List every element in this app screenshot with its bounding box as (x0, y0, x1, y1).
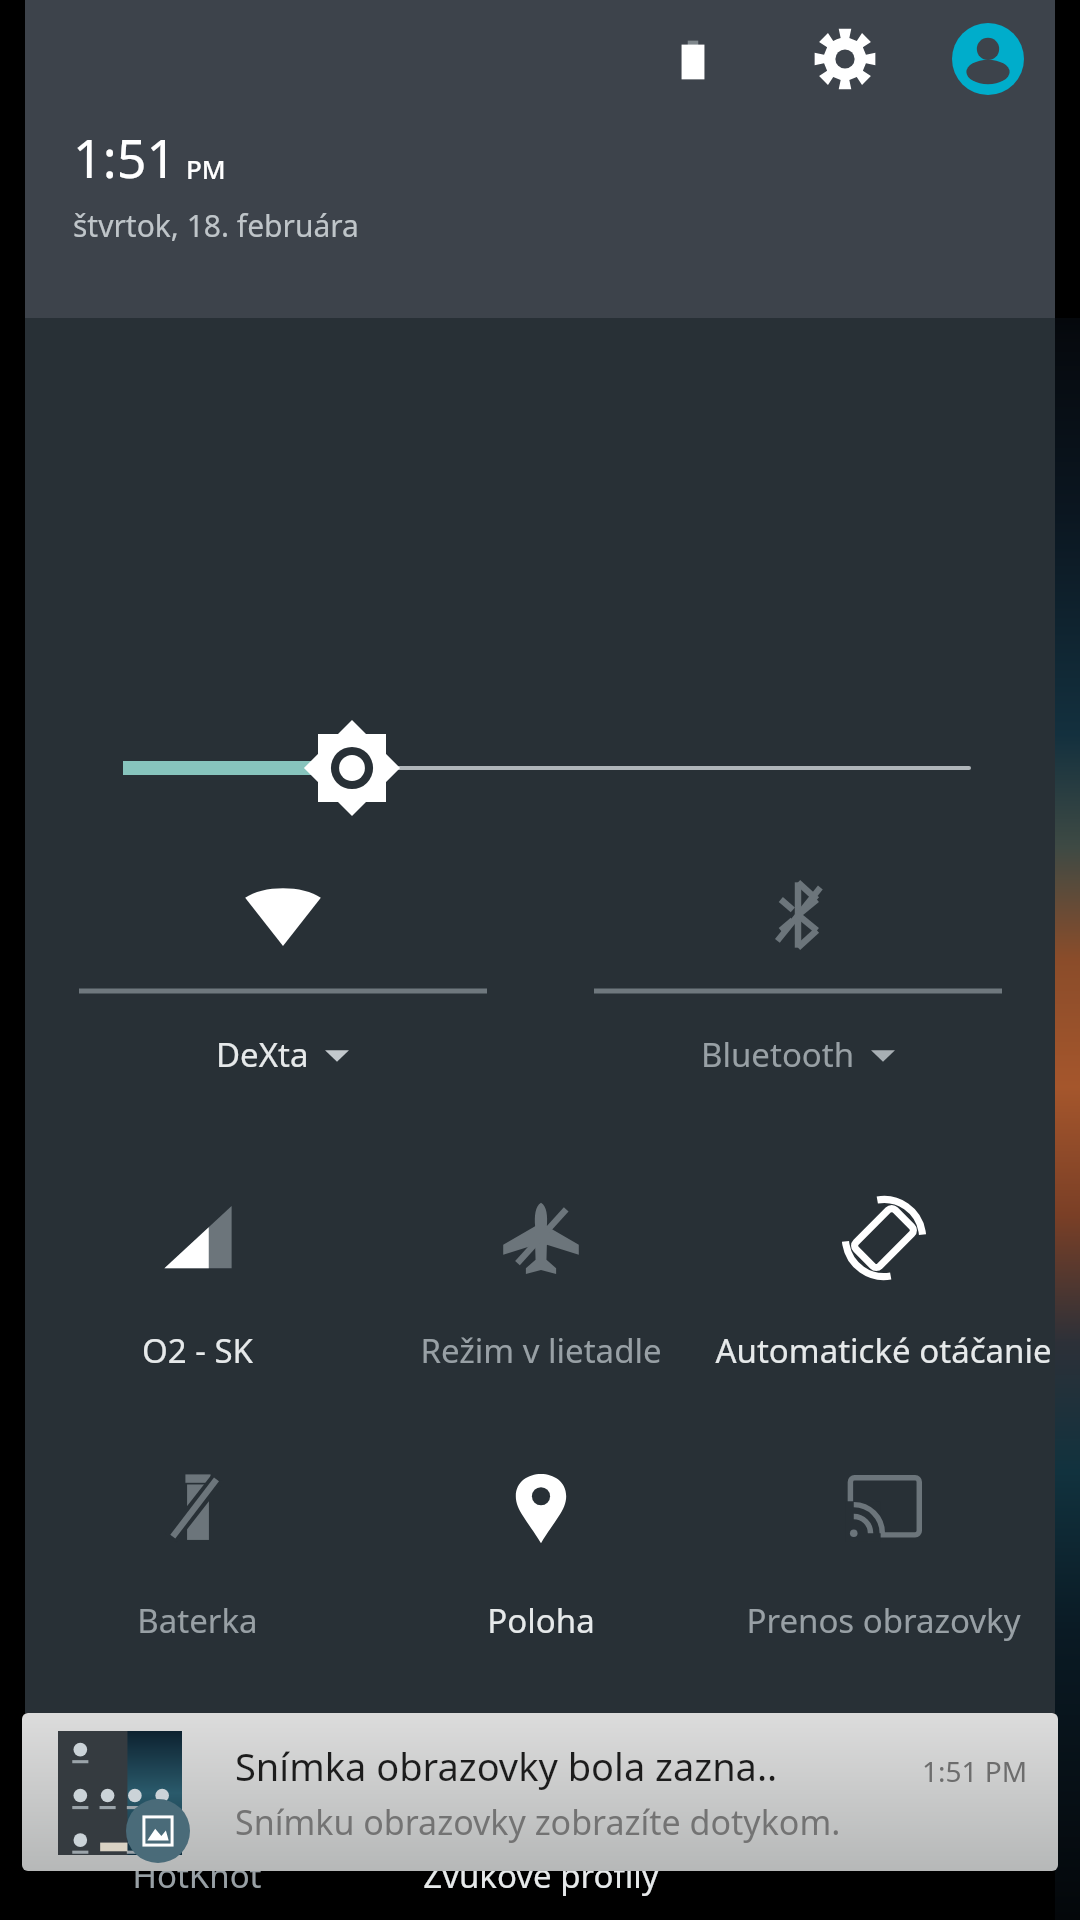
staticText: O2 - SK (142, 1328, 253, 1373)
staticText: Automatické otáčanie (715, 1328, 1052, 1373)
button[interactable]: Brightness (115, 718, 975, 818)
staticText: 1:51 PM (922, 1752, 1028, 1790)
button[interactable]: Snímka obrazovky bola zazna.. (22, 1713, 1058, 1871)
button[interactable]: Režim v lietadle (369, 1178, 712, 1418)
staticText: Snímka obrazovky bola zazna.. (235, 1740, 778, 1792)
staticText: Režim v lietadle (420, 1328, 662, 1373)
staticText: DeXta (216, 1032, 309, 1077)
staticText: PM (186, 151, 226, 186)
button[interactable]: HotKnot (25, 1703, 369, 1920)
button[interactable]: Prenos obrazovky (712, 1448, 1055, 1688)
button[interactable]: Poloha (369, 1448, 712, 1688)
staticText: 1:51 (73, 122, 177, 193)
button[interactable]: User (943, 14, 1033, 104)
button[interactable]: O2 - SK (25, 1178, 369, 1418)
button[interactable]: DeXta (25, 858, 540, 1138)
staticText: Bluetooth (701, 1032, 855, 1077)
staticText: Baterka (137, 1598, 258, 1643)
staticText: Snímku obrazovky zobrazíte dotykom. (235, 1799, 841, 1845)
staticText: Zvukové profily (423, 1853, 659, 1898)
button[interactable]: Battery (653, 20, 733, 100)
button[interactable]: Settings (800, 14, 890, 104)
button[interactable]: Zvukové profily (369, 1703, 712, 1920)
staticText: štvrtok, 18. februára (73, 205, 359, 246)
staticText: Prenos obrazovky (746, 1598, 1021, 1643)
staticText: HotKnot (132, 1853, 262, 1898)
button[interactable]: Baterka (25, 1448, 369, 1688)
staticText: Poloha (487, 1598, 595, 1643)
button[interactable]: Bluetooth (540, 858, 1055, 1138)
button[interactable]: Automatické otáčanie (712, 1178, 1055, 1418)
